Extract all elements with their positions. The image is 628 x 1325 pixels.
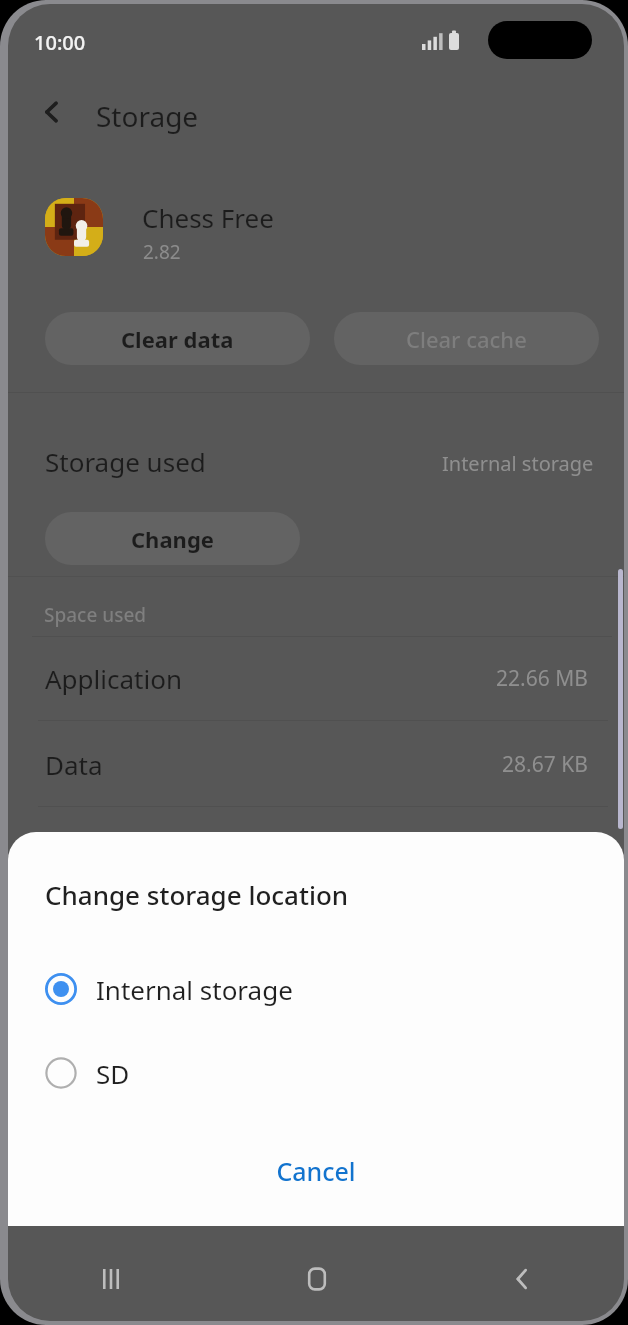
staticText: Internal storage <box>96 972 293 1007</box>
button[interactable]: Back <box>419 1237 624 1321</box>
button[interactable]: Change <box>45 512 300 565</box>
staticText: Space used <box>44 602 147 628</box>
button[interactable]: Back <box>24 84 80 140</box>
button[interactable]: Application <box>8 657 624 699</box>
button[interactable]: Clear data <box>45 312 310 365</box>
staticText: 2.82 <box>143 239 181 265</box>
staticText: 22.66 MB <box>496 664 588 693</box>
staticText: Storage <box>96 97 199 135</box>
staticText: Cancel <box>276 1154 356 1188</box>
button[interactable]: Data <box>8 743 624 785</box>
button[interactable]: Recents <box>8 1237 214 1321</box>
staticText: Change storage location <box>45 877 349 912</box>
staticText: 10:00 <box>34 29 86 56</box>
staticText: 28.67 KB <box>502 750 588 779</box>
staticText: Clear cache <box>406 324 527 354</box>
staticText: Clear data <box>121 324 234 354</box>
staticText: Chess Free <box>142 200 274 235</box>
button[interactable]: SD <box>8 1040 624 1106</box>
button[interactable]: Cancel <box>216 1138 416 1204</box>
button[interactable]: Clear cache <box>334 312 599 365</box>
button[interactable]: Internal storage <box>8 956 624 1022</box>
staticText: SD <box>96 1056 130 1091</box>
staticText: Change <box>131 524 214 554</box>
staticText: Application <box>45 661 182 696</box>
staticText: Storage used <box>45 444 206 479</box>
button[interactable]: Home <box>214 1237 419 1321</box>
staticText: Internal storage <box>442 450 594 477</box>
staticText: Data <box>45 747 103 782</box>
